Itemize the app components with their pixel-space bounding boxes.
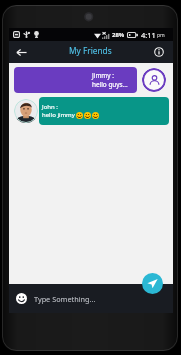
staticText: My Friends xyxy=(69,45,112,56)
staticText: pm xyxy=(157,32,165,39)
staticText: Type Something... xyxy=(34,294,96,304)
staticText: hello jimmy xyxy=(42,111,75,119)
staticText: 28% xyxy=(112,31,125,39)
button[interactable]: Jimmy : xyxy=(14,67,137,93)
staticText: John : xyxy=(42,103,58,111)
button[interactable]: Back xyxy=(9,41,33,63)
staticText: 4:11 xyxy=(141,30,156,40)
button[interactable]: Insert emoji xyxy=(16,293,27,304)
button[interactable]: Jimmy profile xyxy=(142,68,166,92)
staticText: hello guys... xyxy=(92,80,128,89)
button[interactable]: Info xyxy=(149,41,173,63)
button[interactable]: Type Something... xyxy=(34,294,173,304)
button[interactable]: John : xyxy=(39,97,169,125)
button[interactable]: John profile xyxy=(14,99,38,123)
button[interactable]: Send message xyxy=(142,273,163,294)
staticText: Jimmy : xyxy=(92,71,114,80)
